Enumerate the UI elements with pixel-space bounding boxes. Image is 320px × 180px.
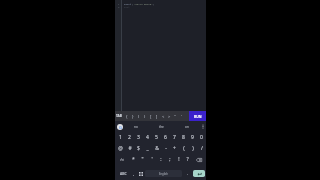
button[interactable]: 3 bbox=[134, 132, 143, 143]
button[interactable]: English bbox=[145, 170, 182, 177]
staticText: ( bbox=[138, 114, 140, 119]
staticText: 9 bbox=[191, 134, 194, 141]
staticText: 8 bbox=[182, 134, 185, 141]
button[interactable]: 0 bbox=[197, 132, 206, 143]
button[interactable]: < bbox=[160, 111, 166, 121]
button[interactable]: RUN bbox=[189, 111, 206, 121]
staticText: { bbox=[126, 114, 128, 119]
staticText: - bbox=[165, 145, 167, 152]
button[interactable]: ; bbox=[165, 154, 174, 165]
staticText: 3 bbox=[137, 134, 140, 141]
staticText: 2 bbox=[118, 5, 120, 8]
button[interactable]: { bbox=[124, 111, 130, 121]
button[interactable]: 8 bbox=[179, 132, 188, 143]
staticText: + bbox=[173, 145, 176, 152]
button[interactable]: " bbox=[172, 111, 178, 121]
button[interactable]: + bbox=[170, 143, 179, 154]
staticText: $ bbox=[137, 145, 140, 152]
staticText: 5 bbox=[155, 134, 158, 141]
staticText: & bbox=[155, 145, 159, 152]
button[interactable]: on bbox=[174, 121, 200, 132]
button[interactable]: . bbox=[183, 167, 193, 180]
staticText: ? bbox=[186, 156, 189, 163]
button[interactable]: ) bbox=[142, 111, 148, 121]
staticText: [ bbox=[150, 114, 152, 119]
staticText: _ bbox=[146, 145, 149, 152]
button[interactable]: Google bbox=[117, 124, 123, 130]
staticText: 7 bbox=[173, 134, 176, 141]
staticText: } bbox=[132, 114, 134, 119]
button[interactable]: & bbox=[152, 143, 161, 154]
staticText: RUN bbox=[194, 114, 202, 119]
button[interactable]: TAB bbox=[115, 111, 123, 121]
staticText: ( bbox=[132, 2, 134, 5]
staticText: : bbox=[160, 156, 162, 163]
button[interactable]: ! bbox=[174, 154, 183, 165]
staticText: print bbox=[124, 2, 132, 5]
button[interactable]: 4 bbox=[143, 132, 152, 143]
button[interactable]: ( bbox=[136, 111, 142, 121]
button[interactable]: 2 bbox=[125, 132, 134, 143]
button[interactable]: no bbox=[123, 121, 148, 132]
button[interactable]: Enter bbox=[193, 170, 205, 177]
button[interactable]: , bbox=[131, 167, 137, 180]
staticText: no bbox=[134, 125, 138, 129]
staticText: ' bbox=[181, 114, 182, 119]
button[interactable]: _ bbox=[143, 143, 152, 154]
staticText: . bbox=[187, 171, 189, 177]
button[interactable]: ( bbox=[179, 143, 188, 154]
staticText: " bbox=[174, 114, 176, 119]
button[interactable]: ] bbox=[154, 111, 160, 121]
button[interactable]: 6 bbox=[161, 132, 170, 143]
button[interactable]: - bbox=[161, 143, 170, 154]
staticText: the bbox=[159, 125, 164, 129]
button[interactable]: / bbox=[197, 143, 206, 154]
button[interactable]: ? bbox=[183, 154, 192, 165]
button[interactable]: Backspace bbox=[192, 154, 206, 165]
button[interactable]: 5 bbox=[152, 132, 161, 143]
button[interactable]: ' bbox=[178, 111, 184, 121]
staticText: 1 bbox=[119, 134, 122, 141]
button[interactable]: Emoji bbox=[137, 167, 144, 180]
button[interactable]: ABC bbox=[115, 167, 131, 180]
button[interactable]: 9 bbox=[188, 132, 197, 143]
staticText: 4 bbox=[146, 134, 149, 141]
button[interactable]: } bbox=[130, 111, 136, 121]
staticText: on bbox=[185, 125, 189, 129]
button[interactable]: ) bbox=[188, 143, 197, 154]
button[interactable]: @ bbox=[115, 143, 125, 154]
staticText: "Hello World" bbox=[134, 2, 153, 5]
staticText: @ bbox=[118, 145, 123, 152]
staticText: 1 bbox=[118, 2, 120, 5]
staticText: , bbox=[133, 171, 135, 177]
button[interactable]: > bbox=[166, 111, 172, 121]
staticText: ( bbox=[183, 145, 185, 152]
button[interactable]: ' bbox=[147, 154, 156, 165]
staticText: ; bbox=[169, 156, 171, 163]
staticText: ' bbox=[151, 156, 153, 163]
button[interactable]: " bbox=[138, 154, 147, 165]
button[interactable]: 1 bbox=[115, 132, 125, 143]
button[interactable]: : bbox=[156, 154, 165, 165]
staticText: * bbox=[132, 156, 135, 163]
staticText: ) bbox=[153, 2, 155, 5]
staticText: ) bbox=[144, 114, 146, 119]
button[interactable]: 7 bbox=[170, 132, 179, 143]
staticText: ! bbox=[178, 156, 180, 163]
staticText: G bbox=[119, 125, 122, 130]
button[interactable]: the bbox=[148, 121, 174, 132]
button[interactable]: $ bbox=[134, 143, 143, 154]
staticText: ) bbox=[192, 145, 194, 152]
button[interactable]: More options bbox=[200, 121, 206, 132]
staticText: TAB bbox=[116, 114, 122, 118]
staticText: English bbox=[159, 172, 168, 176]
staticText: / bbox=[201, 145, 203, 152]
button[interactable]: =\< bbox=[115, 154, 129, 165]
staticText: < bbox=[162, 114, 165, 119]
button[interactable]: # bbox=[125, 143, 134, 154]
staticText: 2 bbox=[128, 134, 131, 141]
button[interactable]: * bbox=[129, 154, 138, 165]
staticText: # bbox=[128, 145, 132, 152]
button[interactable]: [ bbox=[148, 111, 154, 121]
staticText: ] bbox=[156, 114, 158, 119]
